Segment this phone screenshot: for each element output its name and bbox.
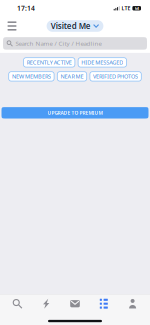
button[interactable]: NEW MEMBERS (9, 72, 54, 81)
button[interactable]: HIDE MESSAGED (78, 58, 126, 67)
button[interactable]: Menu (1, 17, 23, 35)
staticText: Search Name / City / Headline (15, 39, 101, 48)
button[interactable]: Visited Me (47, 20, 103, 32)
button[interactable]: Lists (89, 294, 118, 313)
button[interactable]: UPGRADE TO PREMIUM (1, 107, 148, 118)
button[interactable]: Profile (118, 294, 147, 313)
staticText: NEAR ME (60, 73, 83, 80)
button[interactable]: Search Name / City / Headline (3, 37, 147, 50)
staticText: 64 (135, 6, 139, 11)
button[interactable]: NEAR ME (57, 72, 87, 81)
staticText: LTE (122, 5, 131, 12)
staticText: HIDE MESSAGED (81, 59, 123, 66)
staticText: 17:14 (17, 4, 35, 13)
button[interactable]: VERIFIED PHOTOS (90, 72, 141, 81)
button[interactable]: RECENTLY ACTIVE (23, 58, 75, 67)
button[interactable]: Messages (61, 294, 89, 313)
staticText: NEW MEMBERS (12, 73, 51, 80)
staticText: Visited Me (51, 21, 91, 31)
staticText: UPGRADE TO PREMIUM (47, 109, 102, 116)
button[interactable]: Search (3, 294, 32, 313)
button[interactable]: Activity (32, 294, 61, 313)
staticText: VERIFIED PHOTOS (93, 73, 138, 80)
staticText: RECENTLY ACTIVE (27, 59, 72, 66)
